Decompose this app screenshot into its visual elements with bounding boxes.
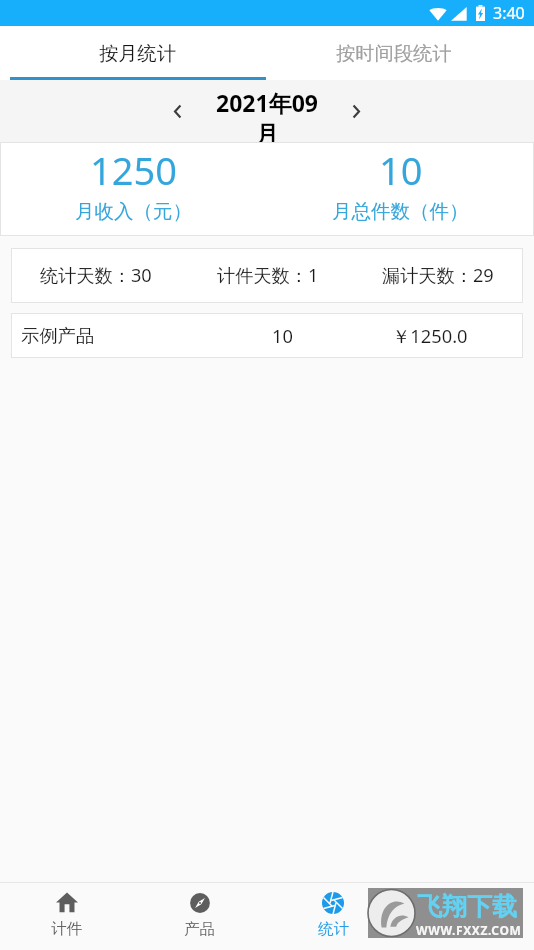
staticText: 按时间段统计 <box>336 41 452 65</box>
staticText: 计件天数：1 <box>217 263 319 288</box>
button[interactable]: 我的 <box>400 883 534 950</box>
staticText: 3:40 <box>493 2 525 24</box>
staticText: 月收入（元） <box>75 199 192 224</box>
button[interactable]: 1250 <box>0 149 267 229</box>
staticText: 示例产品 <box>21 324 95 347</box>
staticText: 10 <box>379 144 423 196</box>
staticText: 统计 <box>318 919 349 939</box>
staticText: 1250 <box>90 144 177 196</box>
staticText: 统计天数：30 <box>40 263 152 288</box>
staticText: 2021年09月 <box>212 87 322 149</box>
staticText: 产品 <box>184 919 215 939</box>
button[interactable]: 产品 <box>133 883 266 950</box>
staticText: ￥1250.0 <box>392 323 468 348</box>
button[interactable]: 示例产品 <box>11 313 523 358</box>
staticText: WWW.FXXZ.COM <box>416 922 522 938</box>
staticText: 飞翔下载 <box>417 891 517 922</box>
button[interactable]: Previous month <box>143 80 212 142</box>
staticText: 我的 <box>452 919 483 939</box>
staticText: 按月统计 <box>99 41 177 65</box>
staticText: 漏计天数：29 <box>382 263 494 288</box>
button[interactable]: 统计 <box>266 883 400 950</box>
button[interactable]: 10 <box>267 149 534 229</box>
staticText: 计件 <box>51 919 82 939</box>
staticText: 10 <box>272 323 293 348</box>
staticText: 月总件数（件） <box>332 199 469 224</box>
button[interactable]: 按月统计 <box>10 26 266 80</box>
button[interactable]: 按时间段统计 <box>266 26 522 80</box>
button[interactable]: Next month <box>322 80 391 142</box>
button[interactable]: 计件 <box>0 883 133 950</box>
